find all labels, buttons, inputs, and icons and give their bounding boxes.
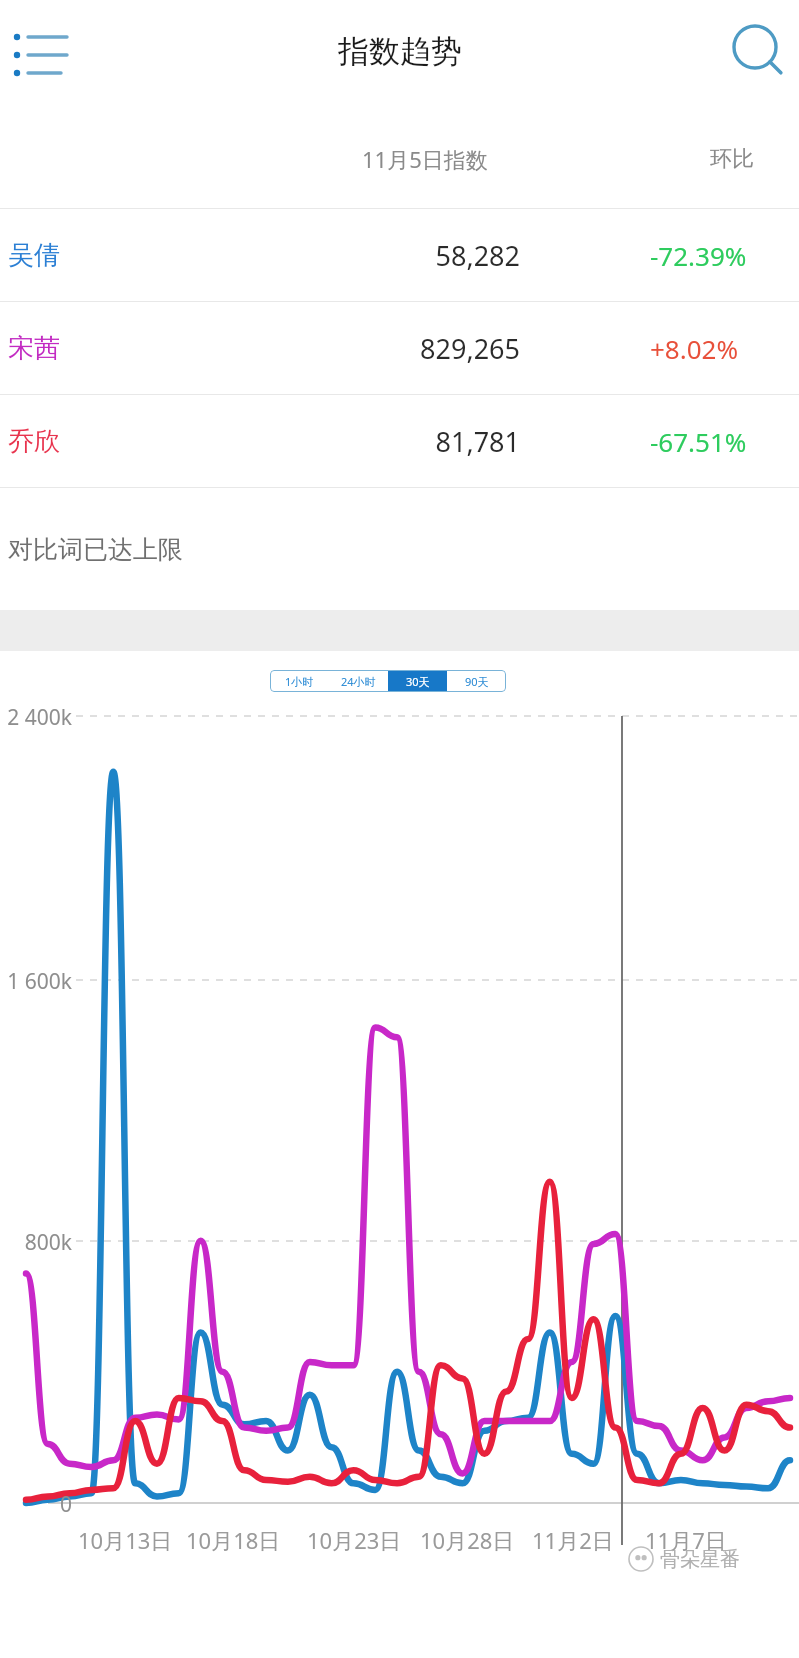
staticText: 10月23日 bbox=[307, 1525, 402, 1555]
button[interactable]: Search bbox=[721, 13, 793, 85]
staticText: 10月28日 bbox=[420, 1525, 515, 1555]
staticText: 2 400k bbox=[0, 703, 72, 732]
staticText: +8.02% bbox=[650, 331, 739, 366]
staticText: 骨朵星番 bbox=[660, 1547, 740, 1572]
staticText: 乔欣 bbox=[8, 425, 60, 458]
staticText: 30天 bbox=[406, 674, 430, 689]
staticText: 指数趋势 bbox=[338, 32, 462, 71]
staticText: -67.51% bbox=[650, 424, 747, 459]
button[interactable]: 30天 bbox=[388, 670, 447, 692]
button[interactable]: 1小时 bbox=[270, 670, 329, 692]
staticText: 宋茜 bbox=[8, 332, 60, 365]
staticText: -72.39% bbox=[650, 238, 747, 273]
staticText: 90天 bbox=[465, 674, 489, 689]
button[interactable]: 24小时 bbox=[329, 670, 388, 692]
staticText: 对比词已达上限 bbox=[8, 534, 183, 565]
button[interactable]: 90天 bbox=[447, 670, 506, 692]
staticText: 829,265 bbox=[300, 330, 520, 367]
staticText: 1 600k bbox=[0, 967, 72, 996]
staticText: 0 bbox=[0, 1490, 72, 1519]
staticText: 10月18日 bbox=[186, 1525, 281, 1555]
staticText: 11月5日指数 bbox=[362, 144, 488, 174]
staticText: 11月7日 bbox=[645, 1525, 727, 1555]
staticText: 800k bbox=[0, 1228, 72, 1257]
staticText: 11月2日 bbox=[532, 1525, 614, 1555]
staticText: 10月13日 bbox=[78, 1525, 173, 1555]
staticText: 24小时 bbox=[341, 674, 376, 689]
button[interactable]: 乔欣 bbox=[0, 395, 799, 487]
staticText: 1小时 bbox=[285, 674, 314, 689]
staticText: 81,781 bbox=[300, 423, 520, 460]
staticText: 58,282 bbox=[300, 237, 520, 274]
staticText: 吴倩 bbox=[8, 239, 60, 272]
staticText: 环比 bbox=[710, 145, 754, 173]
button[interactable]: 宋茜 bbox=[0, 302, 799, 394]
button[interactable]: Menu bbox=[8, 21, 76, 89]
button[interactable]: 吴倩 bbox=[0, 209, 799, 301]
